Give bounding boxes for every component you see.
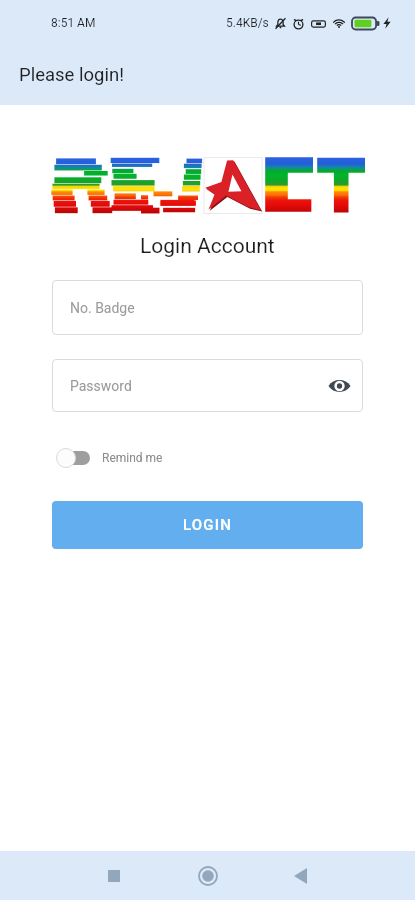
button[interactable]: Back [276, 852, 324, 900]
staticText: No. Badge [70, 300, 135, 316]
button[interactable]: No. Badge [52, 280, 363, 335]
button[interactable]: Show password [324, 371, 354, 401]
staticText: LOGIN [183, 516, 233, 534]
staticText: 8:51 AM [51, 16, 96, 30]
staticText: Please login! [19, 64, 124, 86]
button[interactable]: LOGIN [52, 501, 363, 549]
staticText: Password [70, 378, 132, 394]
staticText: 5.4KB/s [226, 16, 269, 30]
button[interactable]: Recent apps [90, 852, 138, 900]
button[interactable]: Home [184, 852, 232, 900]
button[interactable]: Password [52, 359, 363, 412]
button[interactable]: Remind me [56, 448, 163, 468]
staticText: Remind me [102, 451, 163, 465]
staticText: Login Account [140, 234, 275, 259]
